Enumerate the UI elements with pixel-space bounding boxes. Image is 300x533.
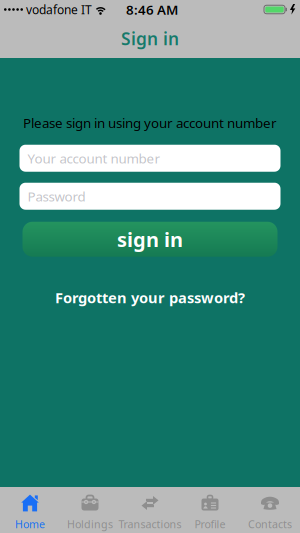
staticText: Password: [27, 187, 85, 205]
button[interactable]: Home: [0, 487, 60, 533]
staticText: Sign in: [121, 27, 179, 50]
staticText: Transactions: [118, 517, 181, 531]
staticText: Please sign in using your account number: [23, 114, 277, 132]
staticText: vodafone IT: [26, 1, 92, 17]
staticText: Your account number: [27, 149, 160, 167]
staticText: 8:46 AM: [126, 1, 178, 18]
button[interactable]: sign in: [22, 222, 277, 257]
staticText: Holdings: [67, 517, 113, 531]
button[interactable]: Transactions: [120, 487, 180, 533]
staticText: sign in: [117, 226, 183, 252]
button[interactable]: Password: [19, 183, 280, 210]
button[interactable]: Forgotten your password?: [55, 288, 245, 307]
staticText: Forgotten your password?: [55, 288, 245, 307]
staticText: Contacts: [248, 517, 292, 531]
button[interactable]: Contacts: [240, 487, 300, 533]
staticText: Home: [15, 517, 45, 531]
staticText: Profile: [194, 517, 225, 531]
button[interactable]: Your account number: [19, 145, 280, 172]
button[interactable]: Holdings: [60, 487, 120, 533]
button[interactable]: Profile: [180, 487, 240, 533]
